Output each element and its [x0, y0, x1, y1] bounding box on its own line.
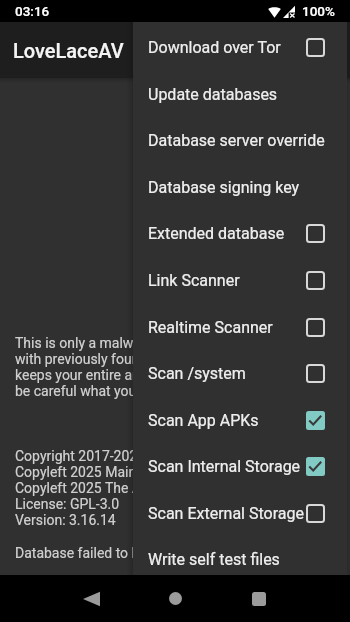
- staticText: Scan Internal Storage: [148, 457, 306, 476]
- staticText: Write self test files: [148, 550, 325, 569]
- staticText: Database server override: [148, 131, 325, 150]
- button[interactable]: Extended database: [133, 210, 347, 257]
- button[interactable]: Update databases: [133, 71, 347, 118]
- staticText: Update databases: [148, 85, 325, 104]
- staticText: Download over Tor: [148, 38, 306, 57]
- button[interactable]: Back: [67, 575, 115, 622]
- staticText: Link Scanner: [148, 271, 306, 290]
- button[interactable]: Download over Tor: [133, 24, 347, 71]
- staticText: Realtime Scanner: [148, 318, 306, 337]
- staticText: Scan External Storage: [148, 504, 306, 523]
- staticText: This is only a malware scanner, it will …: [15, 335, 303, 399]
- button[interactable]: Database server override: [133, 117, 347, 164]
- staticText: Copyright 2017-2025 Liam Greenwood Copyl…: [15, 448, 268, 528]
- button[interactable]: Scan /system: [133, 350, 347, 397]
- staticText: LoveLaceAV: [13, 39, 124, 62]
- button[interactable]: Home: [151, 575, 199, 622]
- button[interactable]: Database signing key: [133, 164, 347, 211]
- staticText: Scan /system: [148, 364, 306, 383]
- button[interactable]: Link Scanner: [133, 257, 347, 304]
- staticText: Extended database: [148, 224, 306, 243]
- button[interactable]: Realtime Scanner: [133, 304, 347, 351]
- button[interactable]: Recent apps: [235, 575, 283, 622]
- button[interactable]: Write self test files: [133, 536, 347, 575]
- staticText: 03:16: [15, 3, 50, 19]
- button[interactable]: Scan External Storage: [133, 490, 347, 537]
- staticText: 100%: [302, 3, 335, 19]
- staticText: Database signing key: [148, 178, 325, 197]
- staticText: Scan App APKs: [148, 411, 306, 430]
- staticText: Database failed to load: [15, 545, 159, 561]
- button[interactable]: Scan App APKs: [133, 397, 347, 444]
- button[interactable]: Scan Internal Storage: [133, 443, 347, 490]
